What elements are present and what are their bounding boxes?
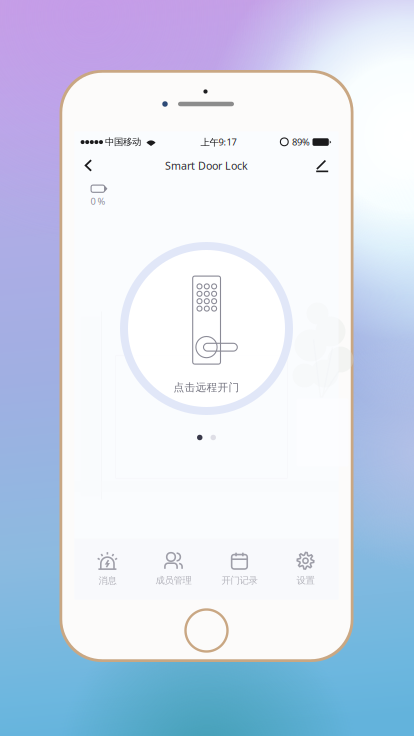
staticText: 中国移动 xyxy=(105,136,141,148)
staticText: 点击远程开门 xyxy=(173,381,239,394)
staticText: 0 % xyxy=(90,195,105,207)
button[interactable]: 设置 xyxy=(272,538,338,599)
button[interactable]: Edit xyxy=(302,152,338,179)
staticText: 消息 xyxy=(98,575,116,586)
button[interactable]: 点击远程开门 xyxy=(124,246,289,411)
staticText: 开门记录 xyxy=(221,575,257,586)
button[interactable]: 成员管理 xyxy=(140,538,206,599)
staticText: 设置 xyxy=(296,575,314,586)
button[interactable]: 消息 xyxy=(74,538,140,599)
staticText: 89% xyxy=(292,136,310,148)
staticText: Smart Door Lock xyxy=(165,158,248,173)
staticText: 成员管理 xyxy=(155,575,191,586)
staticText: 上午9:17 xyxy=(200,136,236,148)
button[interactable]: 开门记录 xyxy=(206,538,272,599)
button[interactable]: Back xyxy=(74,152,106,179)
